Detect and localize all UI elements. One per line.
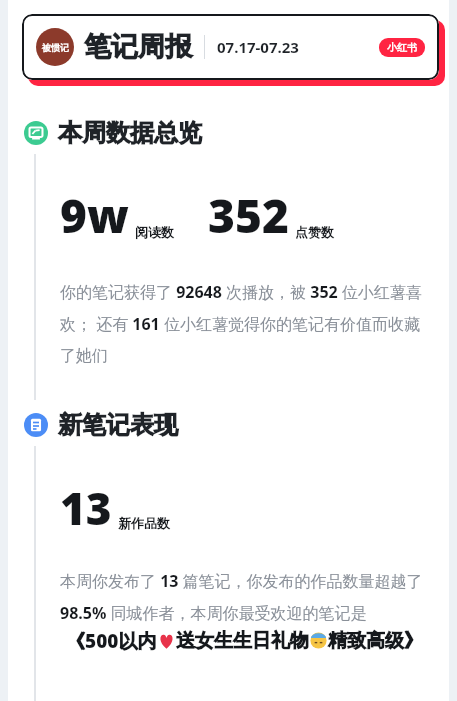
staticText: 352: [208, 184, 289, 247]
button[interactable]: Data overview: [24, 118, 457, 148]
staticText: 阅读数: [135, 224, 174, 240]
staticText: 本周数据总览: [58, 118, 202, 148]
staticText: 点赞数: [295, 224, 334, 240]
staticText: 新笔记表现: [58, 410, 178, 440]
button[interactable]: 被惯记: [22, 14, 439, 80]
button[interactable]: 小红书: [379, 38, 425, 57]
staticText: 你的笔记获得了 92648 次播放，被 352 位小红薯喜欢； 还有 161 位…: [60, 281, 431, 366]
other: Notes: [24, 413, 48, 437]
staticText: 精致高级》: [328, 629, 423, 653]
other: Data overview: [24, 121, 48, 145]
staticText: 07.17-07.23: [217, 37, 299, 57]
staticText: 笔记周报: [84, 30, 192, 64]
button[interactable]: Notes: [24, 410, 457, 440]
staticText: 被惯记: [42, 42, 69, 53]
staticText: 新作品数: [118, 515, 170, 531]
staticText: 《500以内: [66, 628, 157, 654]
staticText: 本周你发布了 13 篇笔记，你发布的作品数量超越了 98.5% 同城作者，本周你…: [60, 570, 431, 624]
staticText: 13: [60, 478, 112, 538]
staticText: 9w: [60, 184, 129, 247]
button[interactable]: 《500以内: [66, 628, 423, 654]
staticText: 送女生生日礼物: [176, 629, 309, 653]
staticText: 小红书: [387, 41, 417, 54]
